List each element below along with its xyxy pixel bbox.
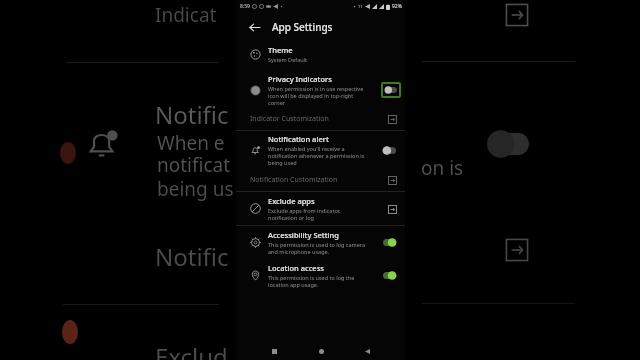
staticText: Indicat (155, 2, 217, 28)
button[interactable]: Indicator Customization (386, 113, 398, 125)
button[interactable]: Notification Customization (386, 174, 398, 186)
staticText: and microphone usage. (268, 248, 330, 255)
staticText: This permission is used to log camera (268, 241, 366, 248)
button[interactable]: Privacy Indicators toggle (381, 82, 401, 98)
staticText: Location access (268, 263, 324, 273)
staticText: Accessibility Setting (268, 230, 339, 240)
staticText: This permission is used to log the (268, 274, 355, 281)
staticText: corner (268, 99, 286, 106)
staticText: icon will be displayed in top-right (268, 92, 354, 99)
staticText: 92% (392, 3, 402, 10)
button[interactable]: Privacy Indicators (236, 72, 405, 108)
button[interactable]: Theme (236, 42, 405, 66)
button[interactable]: Notification alert (236, 131, 405, 169)
staticText: Indicator Customization (250, 114, 386, 124)
button[interactable]: Open exclude apps (386, 203, 398, 215)
staticText: notification or log (268, 214, 314, 221)
staticText: 11 (358, 4, 363, 9)
staticText: being us (157, 176, 234, 202)
staticText: Exclud (155, 340, 228, 360)
button[interactable]: Location access (236, 259, 405, 292)
staticText: When permission is in use respective (268, 85, 364, 92)
staticText: 8:59 (240, 3, 250, 10)
staticText: When e (157, 130, 225, 156)
staticText: location app usage. (268, 281, 319, 288)
staticText: Theme (268, 45, 293, 55)
button[interactable]: Location access toggle (381, 270, 398, 281)
button[interactable]: Home (313, 343, 329, 359)
staticText: Exclude apps (268, 196, 315, 206)
button[interactable]: Notification Customization (236, 169, 405, 191)
staticText: on is (421, 155, 464, 181)
button[interactable]: Exclude apps (236, 192, 405, 225)
button[interactable]: Back (359, 343, 375, 359)
button[interactable]: Notification alert toggle (381, 145, 398, 156)
button[interactable]: Accessibility Setting (236, 226, 405, 259)
staticText: Exclude apps from indicator, (268, 207, 341, 214)
staticText: When enabled you'll receive a (268, 145, 345, 152)
staticText: Privacy Indicators (268, 74, 332, 84)
staticText: Notific (155, 98, 229, 131)
staticText: notificat (157, 152, 231, 178)
button[interactable]: Recents (266, 343, 282, 359)
button[interactable]: Accessibility Setting toggle (381, 237, 398, 248)
button[interactable]: Indicator Customization (236, 108, 405, 130)
staticText: being used (268, 159, 297, 166)
staticText: Notific (155, 240, 229, 273)
staticText: notification whenever a permission is (268, 152, 365, 159)
staticText: System Default (268, 56, 308, 63)
staticText: App Settings (272, 20, 333, 34)
staticText: Notification alert (268, 134, 329, 144)
button[interactable]: Back (244, 17, 264, 37)
staticText: Notification Customization (250, 175, 386, 185)
